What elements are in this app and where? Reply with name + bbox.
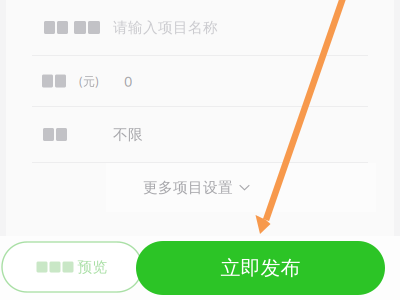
button[interactable]: 立即发布 bbox=[136, 241, 385, 295]
staticText: 预览 bbox=[77, 258, 107, 276]
staticText: 更多项目设置 bbox=[143, 178, 233, 196]
button[interactable]: 更多项目设置 bbox=[106, 163, 376, 212]
staticText: 立即发布 bbox=[220, 256, 300, 280]
button[interactable]: 请输入项目名称 bbox=[6, 0, 394, 55]
button[interactable]: 不限 bbox=[6, 107, 394, 162]
staticText: 请输入项目名称 bbox=[113, 18, 218, 36]
staticText: (元) bbox=[79, 73, 99, 89]
staticText: 不限 bbox=[113, 125, 143, 143]
button[interactable]: (元) bbox=[6, 56, 394, 106]
button[interactable]: 预览 bbox=[2, 242, 142, 292]
staticText: 0 bbox=[124, 71, 132, 91]
